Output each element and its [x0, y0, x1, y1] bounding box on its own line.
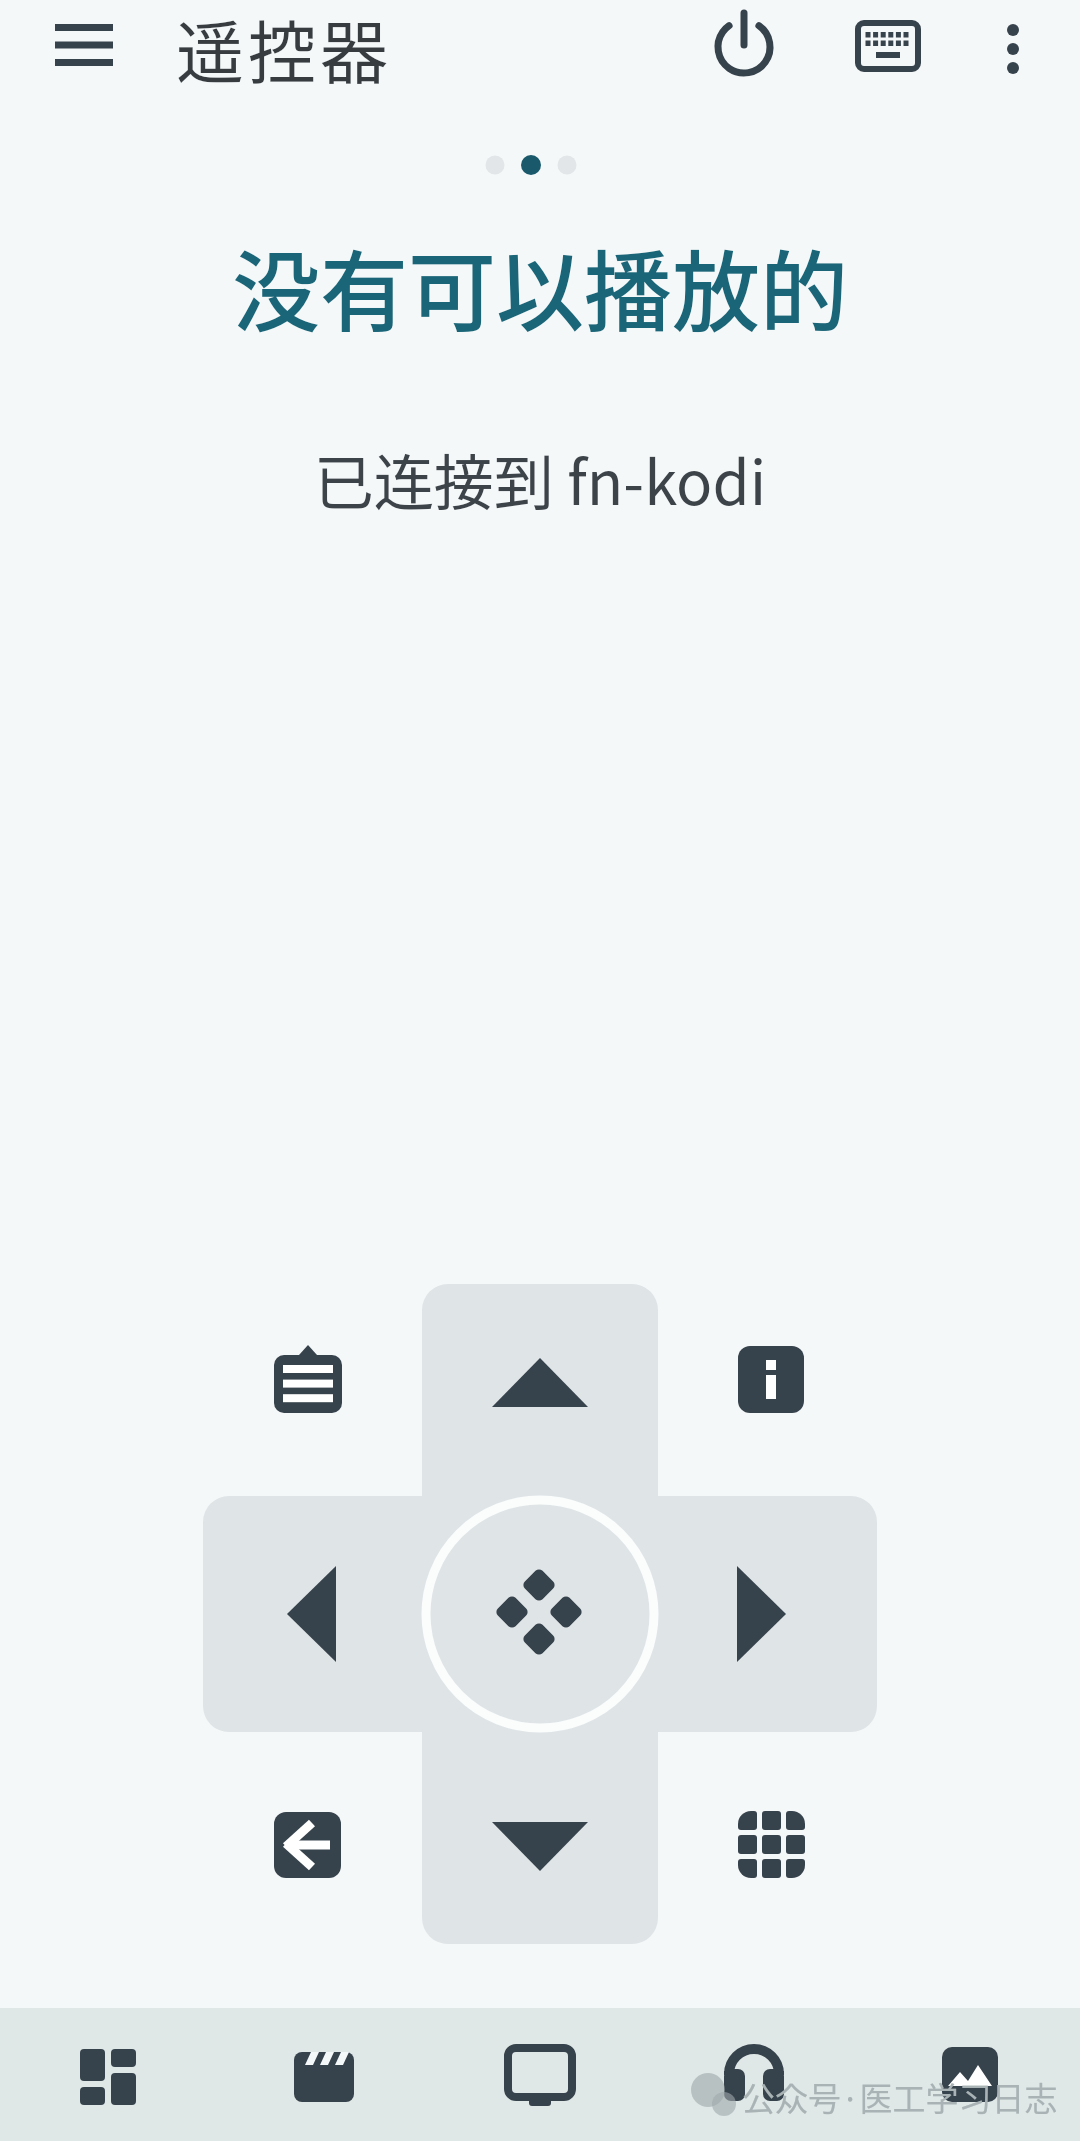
button[interactable] [738, 1811, 805, 1878]
button[interactable] [738, 1346, 804, 1413]
button[interactable] [40, 10, 128, 80]
button[interactable] [648, 2008, 864, 2141]
button[interactable] [0, 2008, 216, 2141]
button[interactable] [422, 1284, 658, 1496]
button[interactable] [658, 1496, 870, 1732]
staticText: 公众号·医工学习日志 [742, 2073, 1058, 2121]
staticText: 已连接到 fn-kodi [0, 435, 1080, 522]
staticText: 没有可以播放的 [0, 222, 1080, 349]
button[interactable] [216, 2008, 432, 2141]
button[interactable] [978, 2, 1048, 88]
button[interactable] [843, 2, 933, 88]
button[interactable] [203, 1496, 415, 1732]
button[interactable] [422, 1732, 658, 1942]
staticText: 遥控器 [176, 0, 393, 97]
button[interactable] [432, 2008, 648, 2141]
button[interactable] [274, 1812, 341, 1878]
button[interactable] [700, 2, 788, 88]
button[interactable] [274, 1343, 342, 1413]
button[interactable] [864, 2008, 1080, 2141]
button[interactable] [417, 1491, 663, 1737]
